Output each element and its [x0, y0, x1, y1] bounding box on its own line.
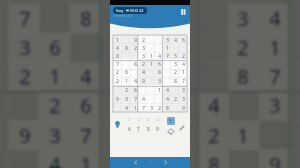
button[interactable]: 1 [131, 103, 139, 112]
button[interactable]: 9 [179, 103, 187, 112]
button[interactable] [113, 103, 122, 112]
staticText: 4 [49, 151, 61, 168]
button[interactable]: 7 [163, 51, 171, 59]
button[interactable] [147, 67, 155, 76]
button[interactable]: Home [146, 158, 155, 167]
button[interactable]: 6 [131, 85, 139, 94]
button[interactable] [131, 67, 139, 76]
button[interactable] [147, 43, 155, 51]
button[interactable]: Erase [167, 127, 175, 135]
staticText: 7 [80, 122, 92, 149]
button[interactable]: 2 [139, 59, 147, 67]
button[interactable]: 9 [139, 76, 147, 85]
button[interactable]: 3 [179, 94, 187, 103]
button[interactable]: 2 [171, 67, 179, 76]
button[interactable]: 6 [155, 59, 163, 67]
button[interactable] [155, 43, 163, 51]
button[interactable]: 2 [135, 118, 143, 126]
button[interactable]: 1 [122, 76, 131, 85]
button[interactable]: 1 [155, 85, 163, 94]
button[interactable]: 8 [155, 67, 163, 76]
button[interactable]: 5 [167, 117, 175, 125]
button[interactable]: 3 [139, 51, 147, 59]
button[interactable] [163, 76, 171, 85]
button[interactable]: 2 [139, 35, 147, 43]
button[interactable]: 8 [163, 103, 171, 112]
button[interactable] [171, 103, 179, 112]
button[interactable]: 4 [163, 94, 171, 103]
button[interactable] [122, 35, 131, 43]
button[interactable]: 4 [131, 76, 139, 85]
button[interactable]: 8 [131, 59, 139, 67]
button[interactable]: Notes [178, 124, 186, 132]
button[interactable]: 5 [171, 51, 179, 59]
button[interactable]: 4 [122, 103, 131, 112]
button[interactable]: Pause [178, 7, 187, 16]
button[interactable]: 6 [122, 67, 131, 76]
button[interactable]: 2 [179, 51, 187, 59]
button[interactable]: 9 [153, 126, 161, 134]
button[interactable] [155, 94, 163, 103]
button[interactable]: 2 [113, 67, 122, 76]
button[interactable]: 4 [139, 94, 147, 103]
button[interactable]: 3 [163, 35, 171, 43]
button[interactable]: 4 [179, 59, 187, 67]
button[interactable]: 7 [179, 76, 187, 85]
button[interactable]: 2 [155, 103, 163, 112]
button[interactable]: 8 [122, 43, 131, 51]
button[interactable]: 2 [113, 76, 122, 85]
button[interactable]: 8 [113, 51, 122, 59]
button[interactable]: 4 [154, 118, 162, 126]
button[interactable]: 7 [134, 126, 142, 134]
button[interactable]: 4 [113, 43, 122, 51]
button[interactable]: 3 [144, 118, 152, 126]
button[interactable] [171, 85, 179, 94]
button[interactable] [171, 43, 179, 51]
button[interactable]: 3 [139, 43, 147, 51]
button[interactable] [147, 76, 155, 85]
button[interactable]: 1 [163, 43, 171, 51]
button[interactable]: Easy [113, 7, 147, 14]
button[interactable] [139, 85, 147, 94]
button[interactable] [131, 51, 139, 59]
button[interactable]: 4 [155, 51, 163, 59]
button[interactable]: Back [131, 158, 140, 167]
button[interactable]: 3 [179, 85, 187, 94]
button[interactable] [122, 59, 131, 67]
button[interactable] [147, 85, 155, 94]
button[interactable] [147, 35, 155, 43]
button[interactable]: 3 [122, 94, 131, 103]
button[interactable]: 8 [171, 76, 179, 85]
button[interactable]: 4 [139, 67, 147, 76]
button[interactable] [155, 35, 163, 43]
button[interactable]: Hint [113, 120, 122, 129]
button[interactable]: 7 [139, 103, 147, 112]
button[interactable]: 1 [113, 35, 122, 43]
button[interactable]: 2 [171, 94, 179, 103]
button[interactable] [163, 67, 171, 76]
button[interactable]: 1 [147, 51, 155, 59]
button[interactable]: 9 [113, 94, 122, 103]
button[interactable]: 1 [147, 59, 155, 67]
button[interactable]: 9 [131, 35, 139, 43]
button[interactable]: 4 [163, 85, 171, 94]
button[interactable]: 3 [171, 59, 179, 67]
button[interactable]: 6 [179, 35, 187, 43]
button[interactable] [179, 43, 187, 51]
button[interactable] [113, 85, 122, 94]
button[interactable]: 3 [155, 76, 163, 85]
button[interactable]: 1 [179, 67, 187, 76]
button[interactable] [163, 59, 171, 67]
button[interactable]: 3 [147, 103, 155, 112]
button[interactable]: 2 [131, 43, 139, 51]
button[interactable]: 4 [171, 35, 179, 43]
button[interactable]: 8 [144, 126, 152, 134]
button[interactable]: 1 [125, 118, 133, 126]
button[interactable]: 2 [122, 85, 131, 94]
button[interactable]: 7 [131, 94, 139, 103]
button[interactable]: Recents [161, 158, 170, 167]
button[interactable]: 7 [113, 59, 122, 67]
button[interactable] [147, 94, 155, 103]
button[interactable]: 6 [125, 126, 133, 134]
button[interactable] [122, 51, 131, 59]
